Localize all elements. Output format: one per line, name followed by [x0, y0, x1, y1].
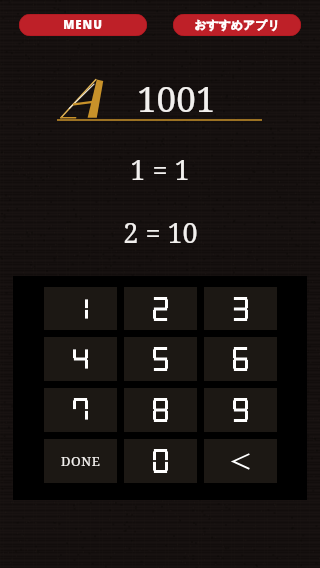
staticText: DONE [61, 452, 101, 470]
button[interactable]: Done [44, 439, 117, 483]
button[interactable]: Backspace [204, 439, 277, 483]
button[interactable] [44, 388, 117, 432]
button[interactable]: おすすめアプリ [173, 14, 301, 36]
button[interactable] [124, 388, 197, 432]
button[interactable] [44, 287, 117, 330]
button[interactable] [124, 439, 197, 483]
staticText: 2 = 10 [123, 214, 198, 251]
button[interactable] [124, 287, 197, 330]
staticText: 1001 [137, 75, 216, 123]
button[interactable] [204, 287, 277, 330]
button[interactable]: MENU [19, 14, 147, 36]
button[interactable] [204, 388, 277, 432]
button[interactable] [204, 337, 277, 381]
staticText: MENU [63, 17, 103, 33]
button[interactable] [124, 337, 197, 381]
staticText: おすすめアプリ [194, 18, 280, 32]
button[interactable] [44, 337, 117, 381]
staticText: 1 = 1 [130, 151, 190, 188]
